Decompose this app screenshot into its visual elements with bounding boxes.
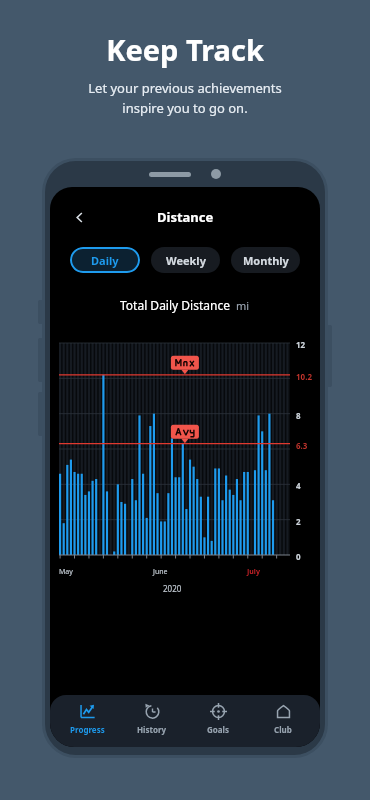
staticText: Keep Track [106,30,264,69]
staticText: 2 [296,516,301,527]
staticText: Distance [157,208,214,226]
staticText: Total Daily Distance [120,297,230,313]
staticText: 2020 [163,583,182,594]
button[interactable]: Goals [189,703,247,735]
staticText: June [153,567,168,577]
staticText: History [137,724,167,735]
staticText: Weekly [166,253,206,268]
staticText: 12 [296,339,306,350]
staticText: 10.2 [296,371,312,382]
staticText: mi [236,298,250,313]
staticText: Goals [207,724,229,735]
staticText: 0 [296,551,301,562]
staticText: Club [274,724,292,735]
staticText: July [247,567,260,577]
button[interactable]: Club [254,703,312,735]
button[interactable]: Weekly [151,247,220,273]
staticText: May [59,567,73,577]
button[interactable]: History [123,703,181,735]
button[interactable]: Daily [70,247,140,273]
button[interactable]: Back [66,204,92,230]
staticText: 8 [296,410,301,421]
button[interactable]: Progress [58,703,116,735]
staticText: Monthly [243,253,289,268]
staticText: 6.3 [296,440,308,451]
staticText: 4 [296,480,301,491]
staticText: Progress [70,724,105,735]
staticText: Daily [91,253,119,268]
staticText: Let your previous achievements inspire y… [88,79,282,117]
button[interactable]: Monthly [231,247,300,273]
